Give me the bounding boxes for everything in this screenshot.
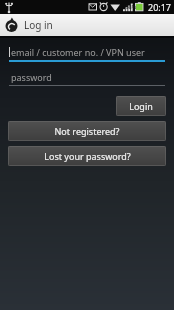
staticText: 20:17: [148, 1, 172, 13]
staticText: password: [11, 71, 52, 83]
staticText: Log in: [24, 18, 53, 32]
button[interactable]: password: [9, 70, 165, 86]
button[interactable]: Lost your password?: [8, 146, 166, 166]
button[interactable]: email / customer no. / VPN user: [9, 45, 165, 62]
staticText: 58%: [126, 4, 137, 11]
button[interactable]: Not registered?: [8, 121, 166, 141]
staticText: email / customer no. / VPN user: [11, 46, 145, 58]
staticText: Login: [129, 100, 153, 112]
staticText: Lost your password?: [44, 150, 131, 162]
button[interactable]: Login: [116, 96, 166, 116]
staticText: Not registered?: [54, 125, 120, 137]
other: App logo: [4, 18, 19, 33]
